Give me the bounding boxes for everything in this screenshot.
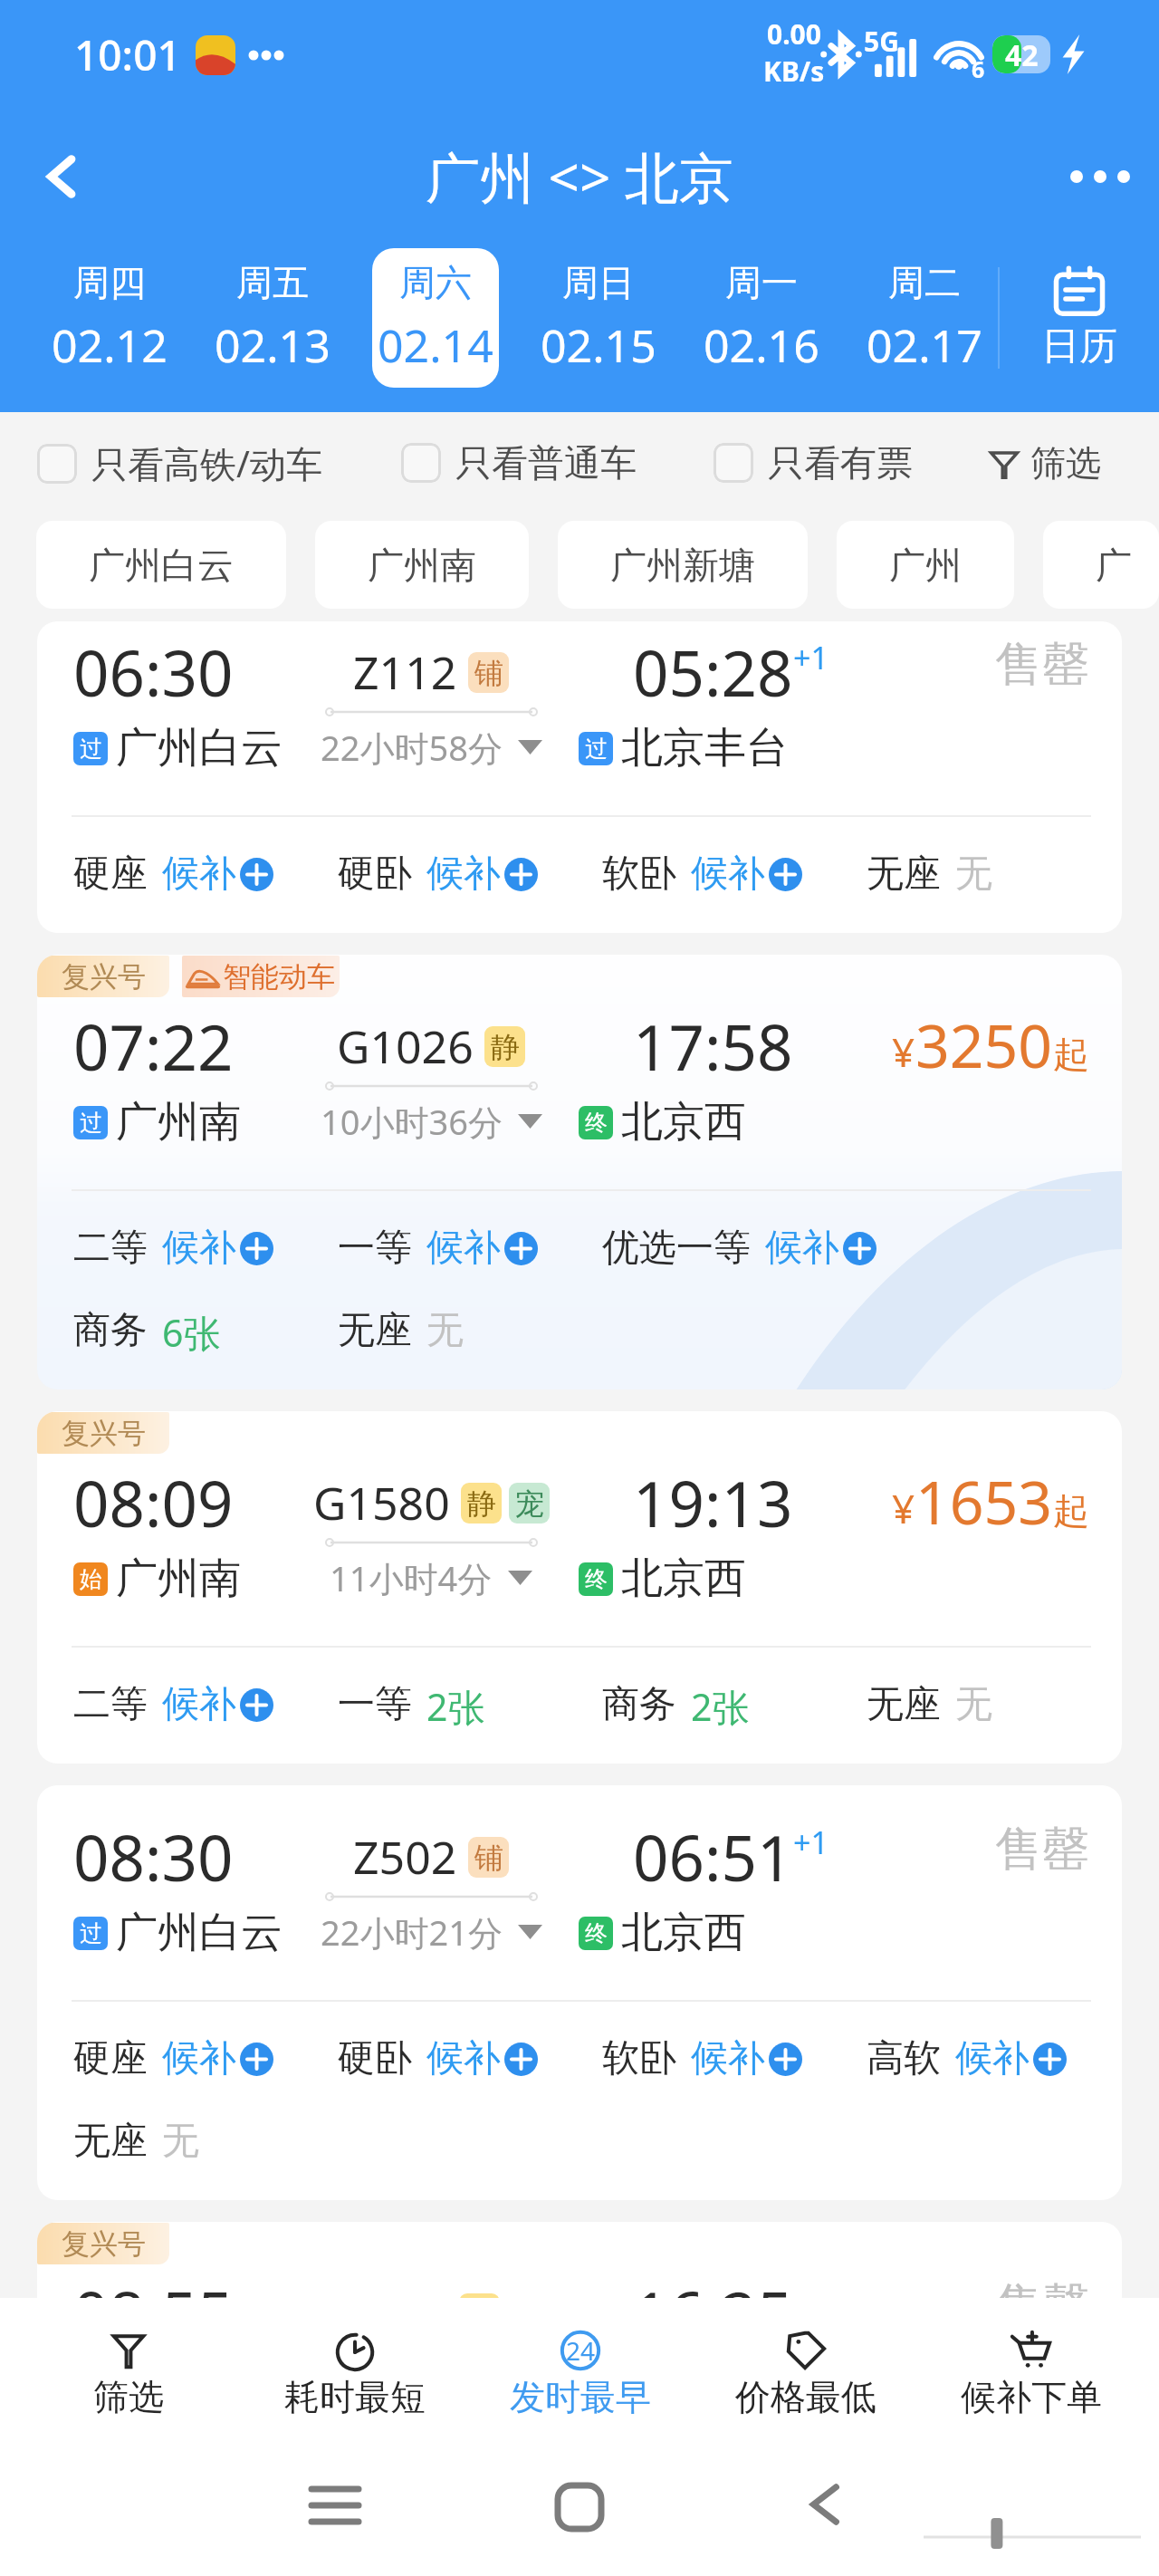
button[interactable]: 复兴号 xyxy=(37,955,1122,1389)
staticText: 硬座 xyxy=(73,851,148,898)
staticText: 广州 <> 北京 xyxy=(426,139,733,214)
button[interactable]: Back xyxy=(34,149,91,205)
staticText: 07:22 xyxy=(73,1004,234,1089)
staticText: 硬座 xyxy=(73,2035,148,2082)
staticText: 广州白云 xyxy=(116,722,283,774)
button[interactable]: 周五 xyxy=(209,248,336,388)
staticText: 价格最低 xyxy=(735,2375,876,2419)
button[interactable]: Home xyxy=(555,2483,604,2532)
button[interactable]: 06:30 xyxy=(37,621,1122,933)
staticText: 周日 xyxy=(562,260,635,305)
staticText: 22小时21分 xyxy=(321,1908,503,1956)
staticText: 10:01 xyxy=(74,26,181,83)
staticText: 北京丰台 xyxy=(621,722,788,774)
staticText: 广州东 xyxy=(1096,543,1106,588)
button[interactable]: 只看高铁/动车 xyxy=(37,438,322,488)
staticText: 无 xyxy=(955,1681,992,1728)
staticText: 起 xyxy=(1053,1488,1089,1533)
staticText: 候补 xyxy=(162,1681,236,1728)
staticText: 终 xyxy=(585,1109,608,1137)
staticText: 广州南 xyxy=(116,2363,241,2416)
staticText: 售罄 xyxy=(995,1820,1089,1879)
button[interactable]: 筛选 xyxy=(991,441,1101,485)
staticText: 过 xyxy=(80,1109,102,1137)
button[interactable]: 周四 xyxy=(46,248,173,388)
staticText: 02.13 xyxy=(215,314,330,376)
button[interactable]: 筛选 xyxy=(15,2298,242,2446)
staticText: 24 xyxy=(566,2333,596,2368)
button[interactable]: 复兴号 xyxy=(37,2222,1122,2574)
staticText: 过 xyxy=(585,735,608,763)
staticText: 2张 xyxy=(426,1681,485,1728)
button[interactable]: 08:30 xyxy=(37,1785,1122,2200)
staticText: 10小时36分 xyxy=(321,1098,503,1145)
staticText: 6张 xyxy=(162,1307,221,1354)
staticText: 22小时58分 xyxy=(321,724,503,771)
staticText: 02.12 xyxy=(52,314,168,376)
staticText: 起 xyxy=(1053,1032,1089,1077)
staticText: 周一 xyxy=(725,260,798,305)
button[interactable]: 周日 xyxy=(535,248,662,388)
staticText: +1 xyxy=(793,1821,829,1863)
staticText: 无 xyxy=(955,851,992,898)
staticText: G1580 xyxy=(313,1472,450,1533)
staticText: ¥ xyxy=(892,1024,915,1079)
staticText: 0.00 xyxy=(767,15,821,53)
button[interactable]: Back xyxy=(802,2483,846,2526)
staticText: 北京西 xyxy=(621,1907,746,1959)
staticText: 无座 xyxy=(867,1681,941,1728)
staticText: 复兴号 xyxy=(62,1416,146,1451)
staticText: 11小时4分 xyxy=(330,1554,493,1601)
button[interactable]: Recents xyxy=(311,2485,359,2527)
button[interactable]: 只看普通车 xyxy=(401,440,637,485)
button[interactable]: 耗时最短 xyxy=(242,2298,467,2446)
staticText: 08:09 xyxy=(73,1460,234,1545)
button[interactable]: 复兴号 xyxy=(37,1411,1122,1764)
button[interactable]: 广州 xyxy=(837,521,1014,609)
staticText: 发时最早 xyxy=(510,2375,651,2419)
staticText: 高软 xyxy=(867,2035,941,2082)
staticText: 日历 xyxy=(1041,322,1117,370)
staticText: 静 xyxy=(465,2296,494,2332)
button[interactable]: 周六 xyxy=(372,248,499,388)
button[interactable]: 周一 xyxy=(698,248,825,388)
staticText: ¥ xyxy=(892,1481,915,1535)
staticText: 软卧 xyxy=(602,2035,676,2082)
staticText: 17:58 xyxy=(633,1004,793,1089)
staticText: 只看有票 xyxy=(768,440,913,485)
staticText: 只看普通车 xyxy=(455,440,637,485)
staticText: 候补 xyxy=(691,2035,765,2082)
staticText: +1 xyxy=(793,637,829,678)
staticText: 复兴号 xyxy=(62,2226,146,2262)
button[interactable]: 广州东 xyxy=(1043,521,1159,609)
staticText: 商务 xyxy=(73,1307,148,1354)
staticText: 北京西 xyxy=(621,1552,746,1605)
staticText: 售罄 xyxy=(995,2276,1089,2336)
staticText: 广州 xyxy=(889,543,962,588)
staticText: 无座 xyxy=(338,1307,412,1354)
button[interactable]: 周二 xyxy=(861,248,988,388)
button[interactable]: More options xyxy=(1068,145,1132,208)
staticText: 只看高铁/动车 xyxy=(91,438,322,488)
button[interactable]: Calendar xyxy=(1000,243,1159,393)
staticText: 5G xyxy=(864,23,899,60)
button[interactable]: 24 xyxy=(467,2298,693,2446)
staticText: 智能动车 xyxy=(223,959,335,995)
staticText: 硬卧 xyxy=(338,2035,412,2082)
staticText: 始 xyxy=(80,1565,102,1593)
staticText: 广州新塘 xyxy=(610,543,755,588)
staticText: 终 xyxy=(585,2376,608,2404)
staticText: 候补 xyxy=(426,1225,501,1272)
staticText: 宠 xyxy=(515,1485,544,1522)
button[interactable]: 广州白云 xyxy=(36,521,286,609)
staticText: 筛选 xyxy=(93,2375,164,2419)
button[interactable]: 价格最低 xyxy=(693,2298,918,2446)
button[interactable]: 广州南 xyxy=(315,521,529,609)
staticText: 二等 xyxy=(73,1681,148,1728)
button[interactable]: 只看有票 xyxy=(714,440,913,485)
button[interactable]: 候补下单 xyxy=(918,2298,1144,2446)
button[interactable]: 广州新塘 xyxy=(558,521,808,609)
